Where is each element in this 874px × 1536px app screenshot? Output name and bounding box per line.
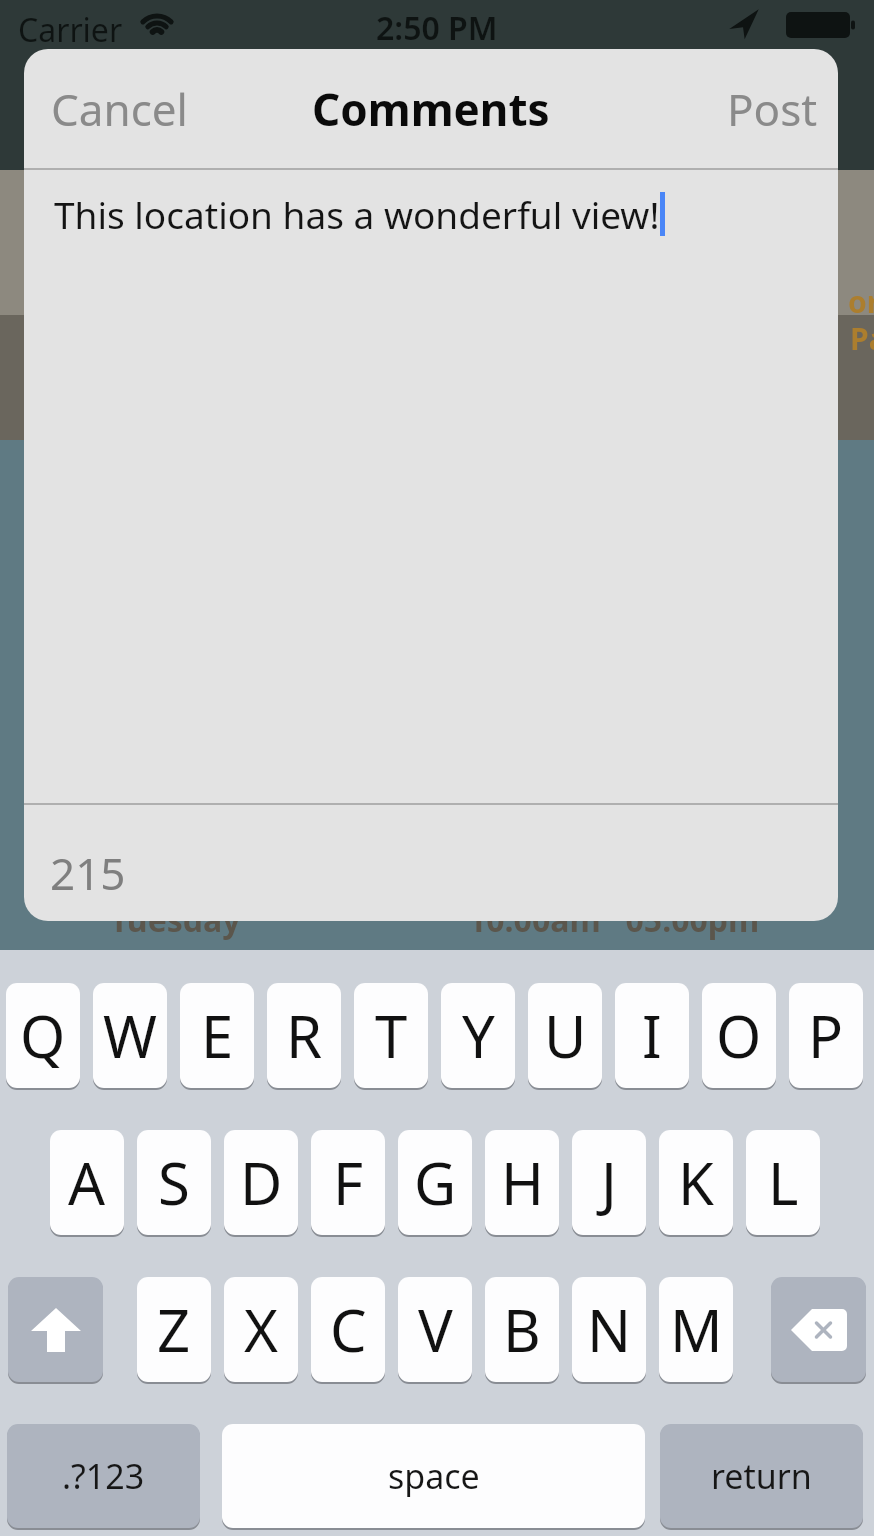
staticText: V: [418, 1290, 453, 1369]
staticText: P: [808, 996, 844, 1075]
staticText: N: [587, 1290, 632, 1369]
button[interactable]: L: [746, 1130, 820, 1235]
staticText: Z: [157, 1290, 191, 1369]
button[interactable]: G: [398, 1130, 472, 1235]
button[interactable]: [8, 1277, 103, 1382]
staticText: Comments: [312, 79, 550, 139]
staticText: orr: [848, 281, 874, 322]
staticText: O: [716, 996, 762, 1075]
staticText: U: [544, 996, 587, 1075]
button[interactable]: Y: [441, 983, 515, 1088]
button[interactable]: X: [224, 1277, 298, 1382]
button[interactable]: P: [789, 983, 863, 1088]
button[interactable]: V: [398, 1277, 472, 1382]
staticText: return: [711, 1453, 812, 1499]
staticText: I: [642, 996, 662, 1075]
staticText: C: [330, 1290, 367, 1369]
staticText: K: [678, 1143, 714, 1222]
staticText: H: [501, 1143, 544, 1222]
button[interactable]: I: [615, 983, 689, 1088]
staticText: 215: [50, 843, 126, 903]
staticText: R: [286, 996, 323, 1075]
staticText: G: [414, 1143, 457, 1222]
staticText: This location has a wonderful view!: [54, 189, 660, 239]
staticText: F: [333, 1143, 364, 1222]
staticText: Post: [727, 79, 818, 139]
button[interactable]: space: [222, 1424, 645, 1528]
button[interactable]: return: [660, 1424, 863, 1528]
button[interactable]: M: [659, 1277, 733, 1382]
button[interactable]: B: [485, 1277, 559, 1382]
button[interactable]: C: [311, 1277, 385, 1382]
button[interactable]: E: [180, 983, 254, 1088]
button[interactable]: T: [354, 983, 428, 1088]
staticText: X: [244, 1290, 278, 1369]
button[interactable]: W: [93, 983, 167, 1088]
staticText: Q: [20, 996, 66, 1075]
button[interactable]: Post: [723, 75, 822, 143]
staticText: 2:50 PM: [376, 6, 498, 50]
staticText: A: [68, 1143, 106, 1222]
button[interactable]: F: [311, 1130, 385, 1235]
staticText: Pa: [850, 318, 874, 359]
staticText: Carrier: [18, 8, 123, 52]
staticText: space: [388, 1453, 480, 1499]
staticText: L: [768, 1143, 799, 1222]
staticText: M: [670, 1290, 723, 1369]
button[interactable]: D: [224, 1130, 298, 1235]
staticText: J: [601, 1143, 617, 1222]
button[interactable]: J: [572, 1130, 646, 1235]
button[interactable]: S: [137, 1130, 211, 1235]
staticText: D: [240, 1143, 283, 1222]
staticText: 10:00am 05:00pm: [468, 898, 760, 942]
staticText: T: [375, 996, 408, 1075]
button[interactable]: U: [528, 983, 602, 1088]
staticText: S: [158, 1143, 190, 1222]
button[interactable]: Z: [137, 1277, 211, 1382]
button[interactable]: N: [572, 1277, 646, 1382]
staticText: E: [201, 996, 234, 1075]
staticText: Y: [462, 996, 495, 1075]
button[interactable]: A: [50, 1130, 124, 1235]
button[interactable]: .?123: [7, 1424, 200, 1528]
button[interactable]: R: [267, 983, 341, 1088]
button[interactable]: K: [659, 1130, 733, 1235]
staticText: Tuesday: [110, 898, 241, 942]
staticText: .?123: [62, 1453, 145, 1499]
button[interactable]: Cancel: [47, 75, 192, 143]
button[interactable]: H: [485, 1130, 559, 1235]
button[interactable]: [771, 1277, 866, 1382]
staticText: B: [503, 1290, 541, 1369]
button[interactable]: Q: [6, 983, 80, 1088]
button[interactable]: O: [702, 983, 776, 1088]
staticText: Cancel: [51, 79, 188, 139]
staticText: W: [103, 996, 157, 1075]
